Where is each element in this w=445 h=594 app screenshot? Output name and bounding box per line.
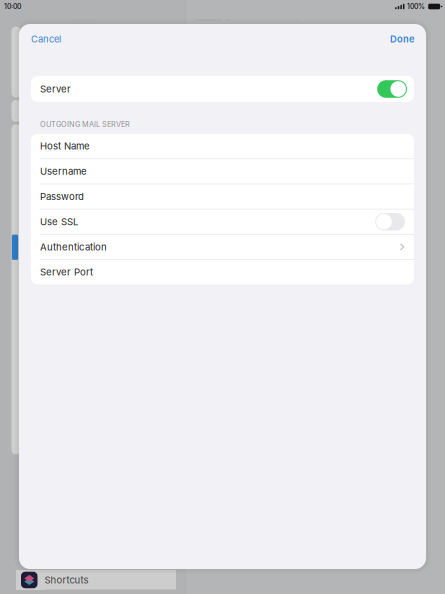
button[interactable]: Done <box>388 30 417 48</box>
staticText: Use SSL <box>40 216 78 227</box>
staticText: 10:00 <box>4 2 21 11</box>
staticText: Server Port <box>40 266 93 278</box>
staticText: Server <box>40 83 71 95</box>
button[interactable]: Use SSL <box>31 209 414 234</box>
staticText: OUTGOING MAIL SERVER <box>40 120 130 129</box>
button[interactable]: Authentication <box>31 235 414 259</box>
staticText: Shortcuts <box>44 574 88 586</box>
button[interactable]: Cancel <box>29 30 63 48</box>
button[interactable]: Host Name <box>31 134 414 158</box>
staticText: Host Name <box>40 140 90 152</box>
button[interactable]: Password <box>31 184 414 209</box>
button[interactable]: Username <box>31 159 414 184</box>
button[interactable]: Server <box>31 76 414 102</box>
staticText: Password <box>40 191 84 202</box>
staticText: Username <box>40 165 87 177</box>
staticText: Cancel <box>31 33 61 45</box>
button[interactable]: Shortcuts <box>16 570 176 590</box>
button[interactable]: Server Port <box>31 260 414 284</box>
staticText: 100% <box>407 2 425 11</box>
staticText: Authentication <box>40 241 107 253</box>
staticText: Done <box>390 33 415 45</box>
